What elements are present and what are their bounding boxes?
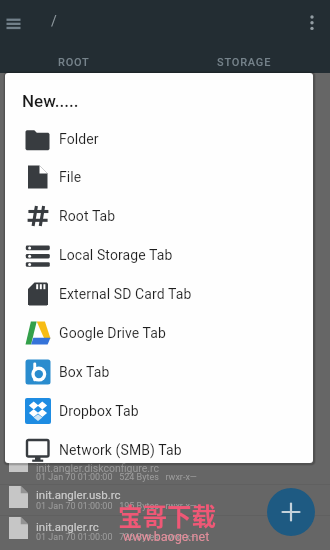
button[interactable]: File (5, 157, 313, 196)
staticText: 01 Jan 70 01:00:00 195 Bytes rwxr-x— (36, 501, 197, 512)
staticText: New..... (22, 91, 79, 111)
button[interactable]: Root Tab (5, 196, 313, 235)
staticText: 宝哥下载 (118, 498, 216, 533)
staticText: / (51, 13, 57, 29)
button[interactable]: Google Drive Tab (5, 313, 313, 352)
staticText: 01 Jan 70 01:00:00 524 Bytes rwxr-x— (36, 472, 197, 483)
staticText: init.angler.rc (36, 520, 99, 533)
button[interactable]: Dropbox Tab (5, 391, 313, 430)
staticText: ROOT (58, 56, 90, 69)
staticText: Folder (59, 131, 99, 147)
staticText: STORAGE (217, 56, 272, 69)
staticText: init.angler.usb.rc (36, 488, 121, 501)
button[interactable] (301, 11, 323, 33)
button[interactable]: Local Storage Tab (5, 235, 313, 274)
staticText: External SD Card Tab (59, 286, 192, 302)
staticText: www.baoge.net (123, 529, 210, 544)
button[interactable]: ROOT (23, 52, 124, 73)
staticText: Dropbox Tab (59, 403, 139, 419)
staticText: Local Storage Tab (59, 247, 173, 263)
button[interactable]: Box Tab (5, 352, 313, 391)
button[interactable] (267, 488, 315, 536)
button[interactable] (3, 14, 25, 34)
button[interactable]: Network (SMB) Tab (5, 430, 313, 469)
staticText: Network (SMB) Tab (59, 442, 182, 458)
staticText: File (59, 169, 82, 185)
button[interactable]: STORAGE (194, 52, 295, 73)
staticText: Box Tab (59, 364, 110, 380)
button[interactable]: Folder (5, 119, 313, 158)
staticText: Root Tab (59, 208, 116, 224)
staticText: init.angler.diskconfigure.rc (36, 462, 159, 474)
button[interactable]: External SD Card Tab (5, 274, 313, 313)
staticText: Google Drive Tab (59, 325, 166, 341)
staticText: 01 Jan 70 01:00:00 726 Bytes rwxr-x— (36, 532, 197, 543)
